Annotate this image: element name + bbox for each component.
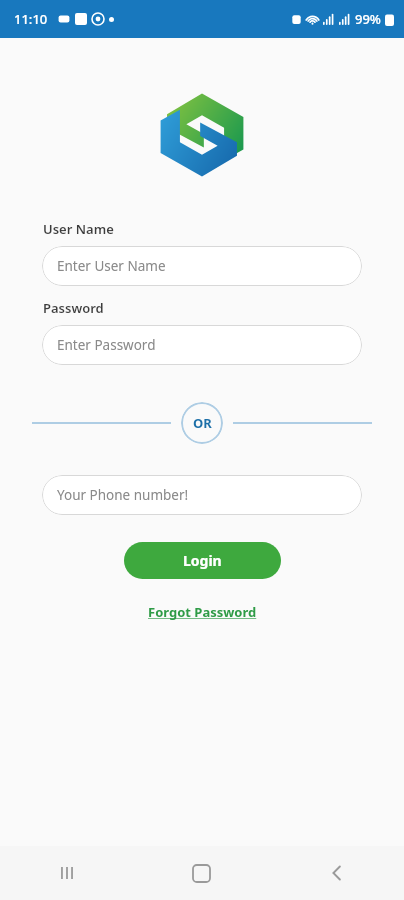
button[interactable]: Enter Password (42, 325, 362, 365)
staticText: OR (193, 414, 212, 432)
staticText: User Name (43, 220, 114, 238)
staticText: Your Phone number! (57, 486, 189, 504)
button[interactable]: Enter User Name (42, 246, 362, 286)
button[interactable]: Home (134, 846, 269, 900)
button[interactable]: Your Phone number! (42, 475, 362, 515)
staticText: Enter Password (57, 336, 156, 354)
staticText: 11:10 (14, 10, 48, 28)
staticText: Forgot Password (148, 603, 257, 621)
staticText: Password (43, 299, 104, 317)
staticText: Enter User Name (57, 257, 166, 275)
button[interactable]: Login (124, 542, 281, 579)
staticText: 99% (355, 10, 381, 28)
button[interactable]: Back (269, 846, 404, 900)
button[interactable]: Forgot Password (140, 600, 265, 624)
staticText: Login (183, 551, 222, 570)
button[interactable]: Recent apps (0, 846, 134, 900)
